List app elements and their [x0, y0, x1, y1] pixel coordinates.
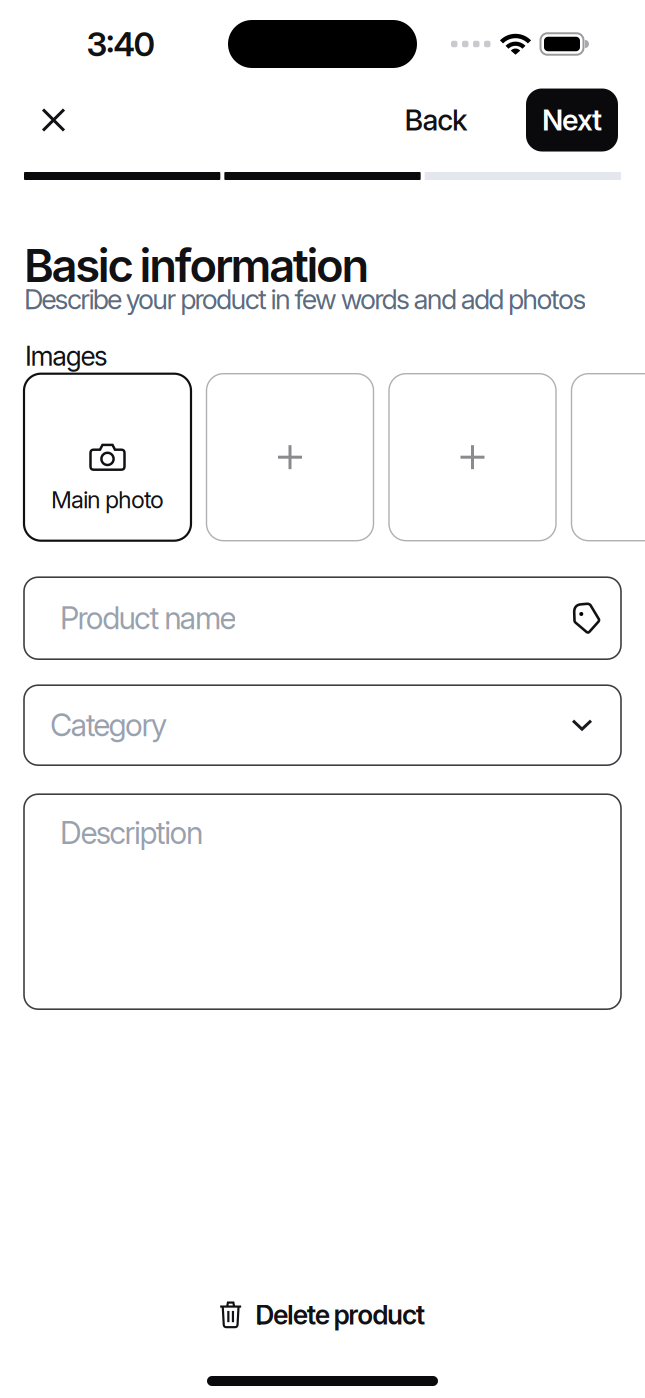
button[interactable]: Category [24, 685, 621, 765]
button[interactable]: Back [405, 103, 468, 137]
button[interactable]: Close [0, 108, 85, 131]
button[interactable]: Add photo [389, 374, 556, 541]
staticText: 3:40 [86, 24, 156, 64]
staticText: Main photo [51, 486, 164, 514]
staticText: Description [60, 814, 203, 851]
staticText: Delete product [255, 1299, 425, 1331]
button[interactable]: Next [526, 88, 618, 151]
staticText: Next [542, 103, 602, 137]
staticText: Category [50, 707, 167, 744]
button[interactable]: Delete product [220, 1299, 425, 1331]
button[interactable]: Add photo [206, 374, 373, 541]
button[interactable]: Main photo [24, 374, 191, 541]
staticText: Images [25, 340, 108, 372]
staticText: Product name [60, 600, 236, 637]
staticText: Basic information [24, 238, 370, 293]
staticText: Describe your product in few words and a… [24, 283, 586, 316]
staticText: Back [405, 103, 468, 137]
button[interactable]: Add photo [571, 374, 645, 541]
